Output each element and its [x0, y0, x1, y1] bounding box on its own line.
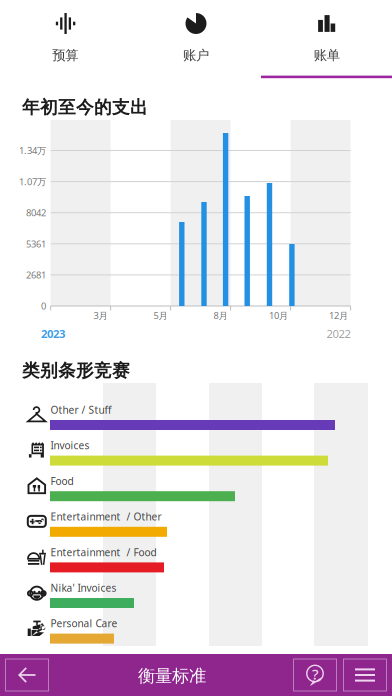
staticText: 5361: [26, 237, 46, 250]
staticText: 类别条形竞赛: [22, 360, 130, 382]
staticText: 12月: [329, 309, 348, 322]
staticText: 年初至今的支出: [22, 96, 148, 119]
staticText: 账户: [183, 47, 209, 63]
staticText: 8月: [214, 309, 228, 322]
button[interactable]: Back: [5, 659, 48, 691]
button[interactable]: 账单: [261, 0, 392, 79]
staticText: Personal Care: [50, 616, 117, 630]
staticText: Entertainment / Other: [50, 510, 161, 523]
staticText: ?: [312, 664, 319, 684]
button[interactable]: Help: [293, 659, 336, 691]
staticText: 2023: [41, 326, 65, 341]
staticText: 1.34万: [19, 144, 46, 157]
staticText: 1.07万: [19, 175, 46, 188]
button[interactable]: 衡量标准: [72, 655, 272, 696]
staticText: 账单: [314, 47, 340, 63]
staticText: Food: [50, 474, 73, 488]
staticText: Invoices: [50, 438, 89, 452]
staticText: 衡量标准: [138, 665, 206, 687]
staticText: 2681: [26, 268, 46, 281]
button[interactable]: Menu: [343, 659, 386, 691]
staticText: 3月: [94, 309, 108, 322]
staticText: 10月: [269, 309, 288, 322]
button[interactable]: 预算: [0, 0, 131, 79]
staticText: 8042: [26, 206, 46, 219]
staticText: 5月: [154, 309, 168, 322]
staticText: Nika' Invoices: [50, 581, 116, 595]
staticText: Entertainment / Food: [50, 545, 156, 559]
staticText: 0: [41, 300, 46, 312]
staticText: Other / Stuff: [50, 403, 111, 417]
button[interactable]: 账户: [131, 0, 261, 79]
staticText: 2022: [327, 326, 351, 341]
staticText: 预算: [52, 47, 78, 63]
